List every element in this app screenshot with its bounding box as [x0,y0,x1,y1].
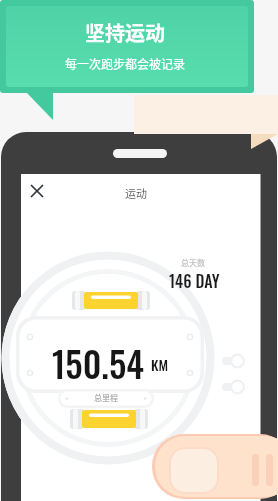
staticText: 146 DAY [169,269,220,293]
staticText: 每一次跑步都会被记录 [0,55,250,75]
staticText: 总天数 [181,257,205,269]
button[interactable]: Close [30,184,44,198]
staticText: 总里程 [58,392,154,406]
staticText: KM [151,354,169,375]
staticText: 运动 [125,185,147,201]
staticText: 坚持运动 [0,18,250,48]
staticText: 150.54 [52,337,144,389]
